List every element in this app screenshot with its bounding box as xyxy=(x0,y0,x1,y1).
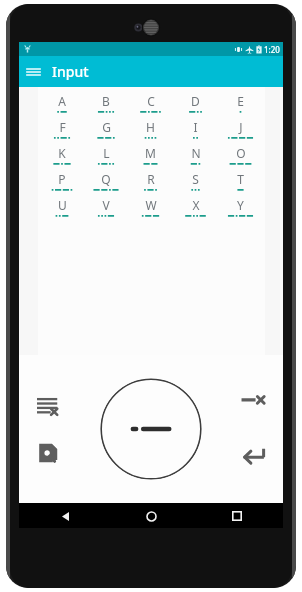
button[interactable]: D xyxy=(173,93,218,119)
button[interactable]: M xyxy=(128,145,173,171)
staticText: X xyxy=(192,197,200,213)
button[interactable]: R xyxy=(128,171,173,197)
button[interactable]: Y xyxy=(218,197,263,223)
staticText: F xyxy=(59,119,66,135)
button[interactable]: Back xyxy=(53,504,77,528)
button[interactable]: O xyxy=(218,145,263,171)
button[interactable]: Find in page xyxy=(35,440,61,466)
staticText: A xyxy=(58,93,66,109)
staticText: G xyxy=(102,119,111,135)
staticText: P xyxy=(58,171,66,187)
staticText: Q xyxy=(101,171,111,187)
staticText: O xyxy=(236,145,246,161)
staticText: K xyxy=(58,145,66,161)
staticText: U xyxy=(58,197,67,213)
button[interactable]: V xyxy=(84,197,128,223)
button[interactable]: Morse input key xyxy=(100,378,202,480)
button[interactable]: Open navigation drawer xyxy=(19,61,48,83)
button[interactable]: U xyxy=(40,197,84,223)
staticText: J xyxy=(239,119,243,135)
staticText: D xyxy=(191,93,200,109)
staticText: R xyxy=(147,171,155,187)
button[interactable]: T xyxy=(218,171,263,197)
button[interactable]: X xyxy=(173,197,218,223)
button[interactable]: Clear all text xyxy=(35,392,61,418)
staticText: H xyxy=(146,119,155,135)
button[interactable]: Delete last symbol xyxy=(240,387,268,415)
button[interactable]: K xyxy=(40,145,84,171)
button[interactable]: C xyxy=(128,93,173,119)
button[interactable]: W xyxy=(128,197,173,223)
button[interactable]: N xyxy=(173,145,218,171)
button[interactable]: Q xyxy=(84,171,128,197)
button[interactable]: E xyxy=(218,93,263,119)
button[interactable]: Enter xyxy=(239,441,269,471)
staticText: T xyxy=(237,171,244,187)
button[interactable]: F xyxy=(40,119,84,145)
staticText: 1:20 xyxy=(264,44,280,55)
button[interactable]: L xyxy=(84,145,128,171)
staticText: L xyxy=(103,145,110,161)
button[interactable]: J xyxy=(218,119,263,145)
button[interactable]: Home xyxy=(139,504,163,528)
staticText: N xyxy=(191,145,201,161)
button[interactable]: G xyxy=(84,119,128,145)
staticText: Input xyxy=(52,62,89,81)
staticText: E xyxy=(237,93,244,109)
staticText: I xyxy=(193,119,198,135)
staticText: V xyxy=(102,197,110,213)
button[interactable]: H xyxy=(128,119,173,145)
button[interactable]: Recent apps xyxy=(225,504,249,528)
staticText: B xyxy=(102,93,110,109)
staticText: Y xyxy=(237,197,244,213)
button[interactable]: P xyxy=(40,171,84,197)
button[interactable]: A xyxy=(40,93,84,119)
staticText: C xyxy=(147,93,155,109)
button[interactable]: S xyxy=(173,171,218,197)
button[interactable]: B xyxy=(84,93,128,119)
staticText: M xyxy=(145,145,156,161)
staticText: S xyxy=(192,171,199,187)
button[interactable]: I xyxy=(173,119,218,145)
staticText: W xyxy=(145,197,157,213)
